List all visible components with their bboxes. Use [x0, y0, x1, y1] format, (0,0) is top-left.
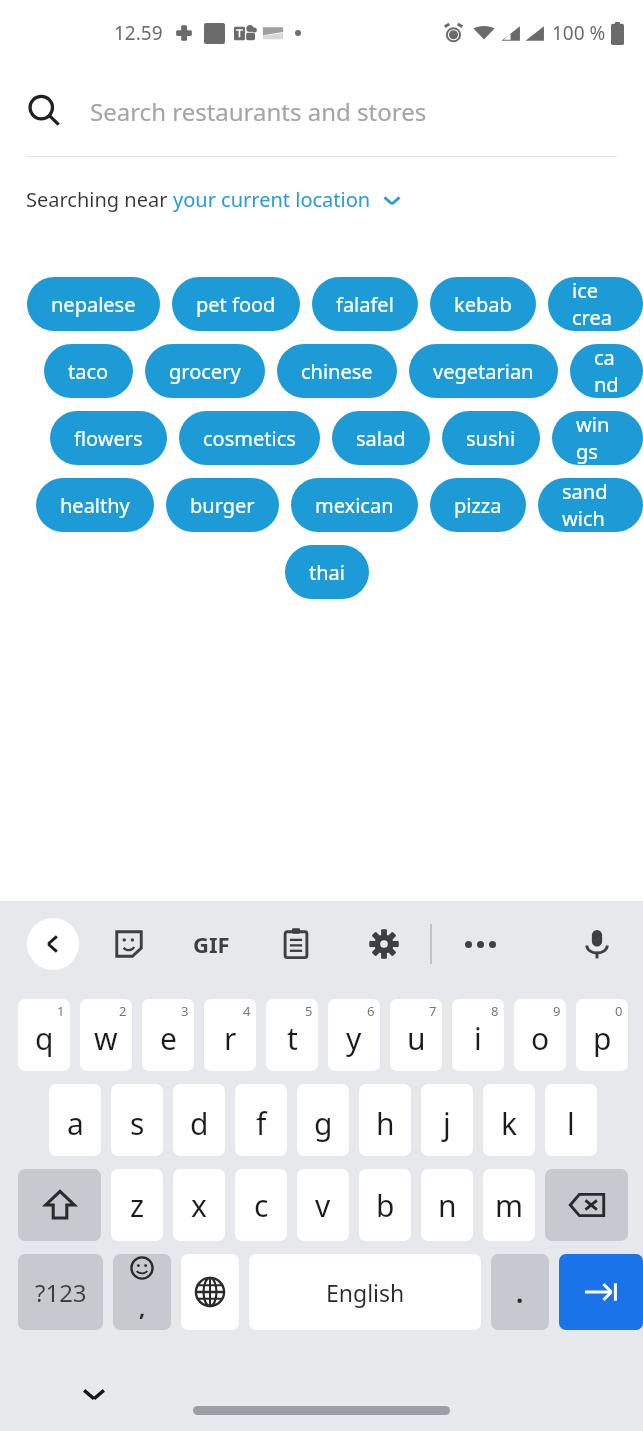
- staticText: x: [191, 1185, 207, 1226]
- staticText: flowers: [74, 425, 143, 452]
- button[interactable]: 6: [328, 999, 380, 1071]
- button[interactable]: 3: [142, 999, 194, 1071]
- button[interactable]: Back: [27, 918, 79, 970]
- button[interactable]: pet food: [172, 277, 300, 331]
- staticText: sandwich: [562, 478, 619, 532]
- button[interactable]: 5: [266, 999, 318, 1071]
- button[interactable]: c: [235, 1169, 287, 1241]
- button[interactable]: pizza: [430, 478, 526, 532]
- button[interactable]: Change language: [181, 1254, 239, 1330]
- button[interactable]: grocery: [145, 344, 265, 398]
- button[interactable]: healthy: [36, 478, 154, 532]
- button[interactable]: 1: [18, 999, 70, 1071]
- staticText: salad: [356, 425, 406, 452]
- button[interactable]: n: [421, 1169, 473, 1241]
- staticText: 6: [367, 1002, 375, 1020]
- staticText: 12.59: [114, 20, 163, 46]
- button[interactable]: Hide keyboard: [72, 1372, 116, 1416]
- button[interactable]: salad: [332, 411, 430, 465]
- staticText: y: [346, 1018, 362, 1059]
- button[interactable]: 9: [514, 999, 566, 1071]
- button[interactable]: 2: [80, 999, 132, 1071]
- staticText: 2: [119, 1002, 127, 1020]
- button[interactable]: x: [173, 1169, 225, 1241]
- staticText: candy: [594, 344, 619, 398]
- button[interactable]: taco: [44, 344, 133, 398]
- button[interactable]: g: [297, 1084, 349, 1156]
- button[interactable]: sandwich: [538, 478, 643, 532]
- staticText: 100 %: [552, 20, 606, 46]
- button[interactable]: More options: [458, 922, 502, 966]
- staticText: f: [256, 1103, 267, 1144]
- button[interactable]: b: [359, 1169, 411, 1241]
- button[interactable]: Backspace: [545, 1169, 628, 1241]
- button[interactable]: .: [491, 1254, 549, 1330]
- button[interactable]: v: [297, 1169, 349, 1241]
- button[interactable]: Settings: [362, 922, 406, 966]
- button[interactable]: sushi: [442, 411, 540, 465]
- staticText: 0: [615, 1002, 623, 1020]
- staticText: p: [593, 1018, 612, 1059]
- button[interactable]: Stickers: [107, 922, 151, 966]
- staticText: nepalese: [51, 291, 136, 318]
- staticText: a: [67, 1103, 84, 1144]
- button[interactable]: z: [111, 1169, 163, 1241]
- staticText: GIF: [193, 929, 230, 959]
- staticText: Searching near: [26, 186, 173, 213]
- button[interactable]: m: [483, 1169, 535, 1241]
- button[interactable]: ?123: [18, 1254, 103, 1330]
- staticText: ice cream: [572, 277, 619, 331]
- staticText: burger: [190, 492, 255, 519]
- staticText: q: [35, 1018, 54, 1059]
- button[interactable]: kebab: [430, 277, 536, 331]
- button[interactable]: your current location: [173, 186, 403, 213]
- button[interactable]: 7: [390, 999, 442, 1071]
- button[interactable]: l: [545, 1084, 597, 1156]
- button[interactable]: cosmetics: [179, 411, 320, 465]
- button[interactable]: nepalese: [27, 277, 160, 331]
- staticText: 5: [305, 1002, 313, 1020]
- button[interactable]: Voice input: [575, 922, 619, 966]
- button[interactable]: s: [111, 1084, 163, 1156]
- button[interactable]: Clipboard: [274, 922, 318, 966]
- button[interactable]: vegetarian: [409, 344, 558, 398]
- staticText: r: [224, 1018, 237, 1059]
- button[interactable]: flowers: [50, 411, 167, 465]
- button[interactable]: ice cream: [548, 277, 643, 331]
- staticText: h: [376, 1103, 395, 1144]
- button[interactable]: 8: [452, 999, 504, 1071]
- button[interactable]: Enter: [559, 1254, 643, 1330]
- staticText: taco: [68, 358, 109, 385]
- button[interactable]: wings: [552, 411, 643, 465]
- button[interactable]: k: [483, 1084, 535, 1156]
- button[interactable]: Emoji: [113, 1254, 171, 1330]
- staticText: pizza: [454, 492, 502, 519]
- staticText: e: [160, 1018, 177, 1059]
- button[interactable]: GIF: [193, 922, 230, 966]
- staticText: cosmetics: [203, 425, 296, 452]
- staticText: English: [326, 1277, 405, 1308]
- button[interactable]: f: [235, 1084, 287, 1156]
- staticText: j: [443, 1103, 451, 1144]
- button[interactable]: 4: [204, 999, 256, 1071]
- button[interactable]: h: [359, 1084, 411, 1156]
- staticText: mexican: [315, 492, 394, 519]
- button[interactable]: thai: [285, 545, 369, 599]
- button[interactable]: candy: [570, 344, 643, 398]
- button[interactable]: burger: [166, 478, 279, 532]
- button[interactable]: 0: [576, 999, 628, 1071]
- button[interactable]: j: [421, 1084, 473, 1156]
- button[interactable]: Shift: [18, 1169, 101, 1241]
- button[interactable]: English: [249, 1254, 481, 1330]
- staticText: your current location: [173, 186, 371, 213]
- button[interactable]: Search: [0, 66, 643, 156]
- button[interactable]: a: [49, 1084, 101, 1156]
- button[interactable]: mexican: [291, 478, 418, 532]
- button[interactable]: falafel: [312, 277, 418, 331]
- button[interactable]: chinese: [277, 344, 397, 398]
- staticText: 1: [57, 1002, 65, 1020]
- button[interactable]: d: [173, 1084, 225, 1156]
- staticText: t: [287, 1018, 298, 1059]
- staticText: i: [474, 1018, 482, 1059]
- staticText: wings: [576, 411, 619, 465]
